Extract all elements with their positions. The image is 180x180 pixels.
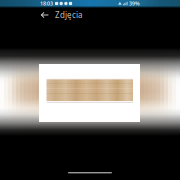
button[interactable]: Back bbox=[40, 8, 51, 22]
staticText: Zdjęcia bbox=[55, 10, 82, 20]
staticText: 18:03 bbox=[40, 0, 53, 7]
staticText: 39% bbox=[129, 0, 140, 7]
